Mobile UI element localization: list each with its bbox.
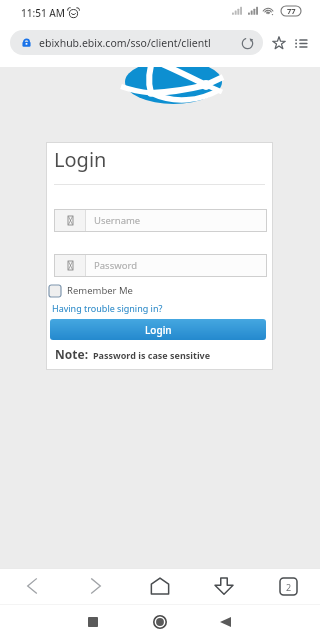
staticText: Note:: [55, 346, 89, 362]
staticText: 2: [286, 581, 292, 593]
button[interactable]: Downloads: [209, 571, 239, 601]
button[interactable]: Switch tabs: [273, 571, 303, 601]
button[interactable]: Reload page: [238, 34, 256, 52]
button[interactable]: Recent apps: [79, 608, 107, 636]
staticText: 77: [287, 6, 296, 16]
button[interactable]: Home: [145, 571, 175, 601]
button[interactable]: Back: [211, 608, 239, 636]
button[interactable]: Having trouble signing in?: [52, 302, 163, 314]
button[interactable]: Go back: [17, 571, 47, 601]
button[interactable]: Home: [146, 608, 174, 636]
button[interactable]: Remember Me: [49, 284, 133, 297]
staticText: Password is case sensitive: [93, 349, 211, 361]
button[interactable]: Go forward: [81, 571, 111, 601]
button[interactable]: Bookmark: [268, 32, 290, 54]
staticText: Remember Me: [67, 284, 133, 297]
button[interactable]: Login: [50, 319, 266, 340]
button[interactable]: Username: [55, 210, 266, 231]
button[interactable]: More options: [290, 32, 312, 54]
staticText: 11:51 AM: [21, 6, 65, 20]
staticText: Password: [94, 259, 137, 272]
staticText: Login: [54, 146, 107, 173]
button[interactable]: Password: [55, 255, 266, 276]
button[interactable]: ebixhub.ebix.com/sso/client/clientl: [10, 30, 263, 55]
staticText: Username: [94, 214, 141, 227]
staticText: ebixhub.ebix.com/sso/client/clientl: [39, 36, 211, 50]
staticText: Login: [145, 323, 172, 337]
